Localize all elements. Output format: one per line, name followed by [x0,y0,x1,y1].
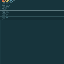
button[interactable] [0,14,64,15]
other: Code editor [0,0,64,64]
button[interactable] [0,15,64,16]
button[interactable] [0,13,64,14]
button[interactable] [0,7,64,8]
button[interactable] [0,11,64,12]
button[interactable] [0,6,64,7]
button[interactable] [0,17,64,18]
button[interactable] [0,3,64,4]
button[interactable] [0,8,64,9]
button[interactable] [0,12,64,13]
button[interactable] [0,5,64,6]
button[interactable] [0,9,64,10]
button[interactable] [0,1,64,2]
button[interactable] [0,2,64,3]
button[interactable] [0,18,64,19]
button[interactable] [0,0,64,1]
